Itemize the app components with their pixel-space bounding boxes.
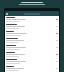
button[interactable] xyxy=(5,23,59,30)
button[interactable] xyxy=(5,58,59,65)
button[interactable] xyxy=(5,44,59,51)
button[interactable] xyxy=(5,30,59,37)
button[interactable] xyxy=(5,16,59,23)
button[interactable] xyxy=(5,51,59,58)
button[interactable] xyxy=(5,37,59,44)
button[interactable] xyxy=(5,65,59,72)
button[interactable]: Search xyxy=(5,11,59,16)
